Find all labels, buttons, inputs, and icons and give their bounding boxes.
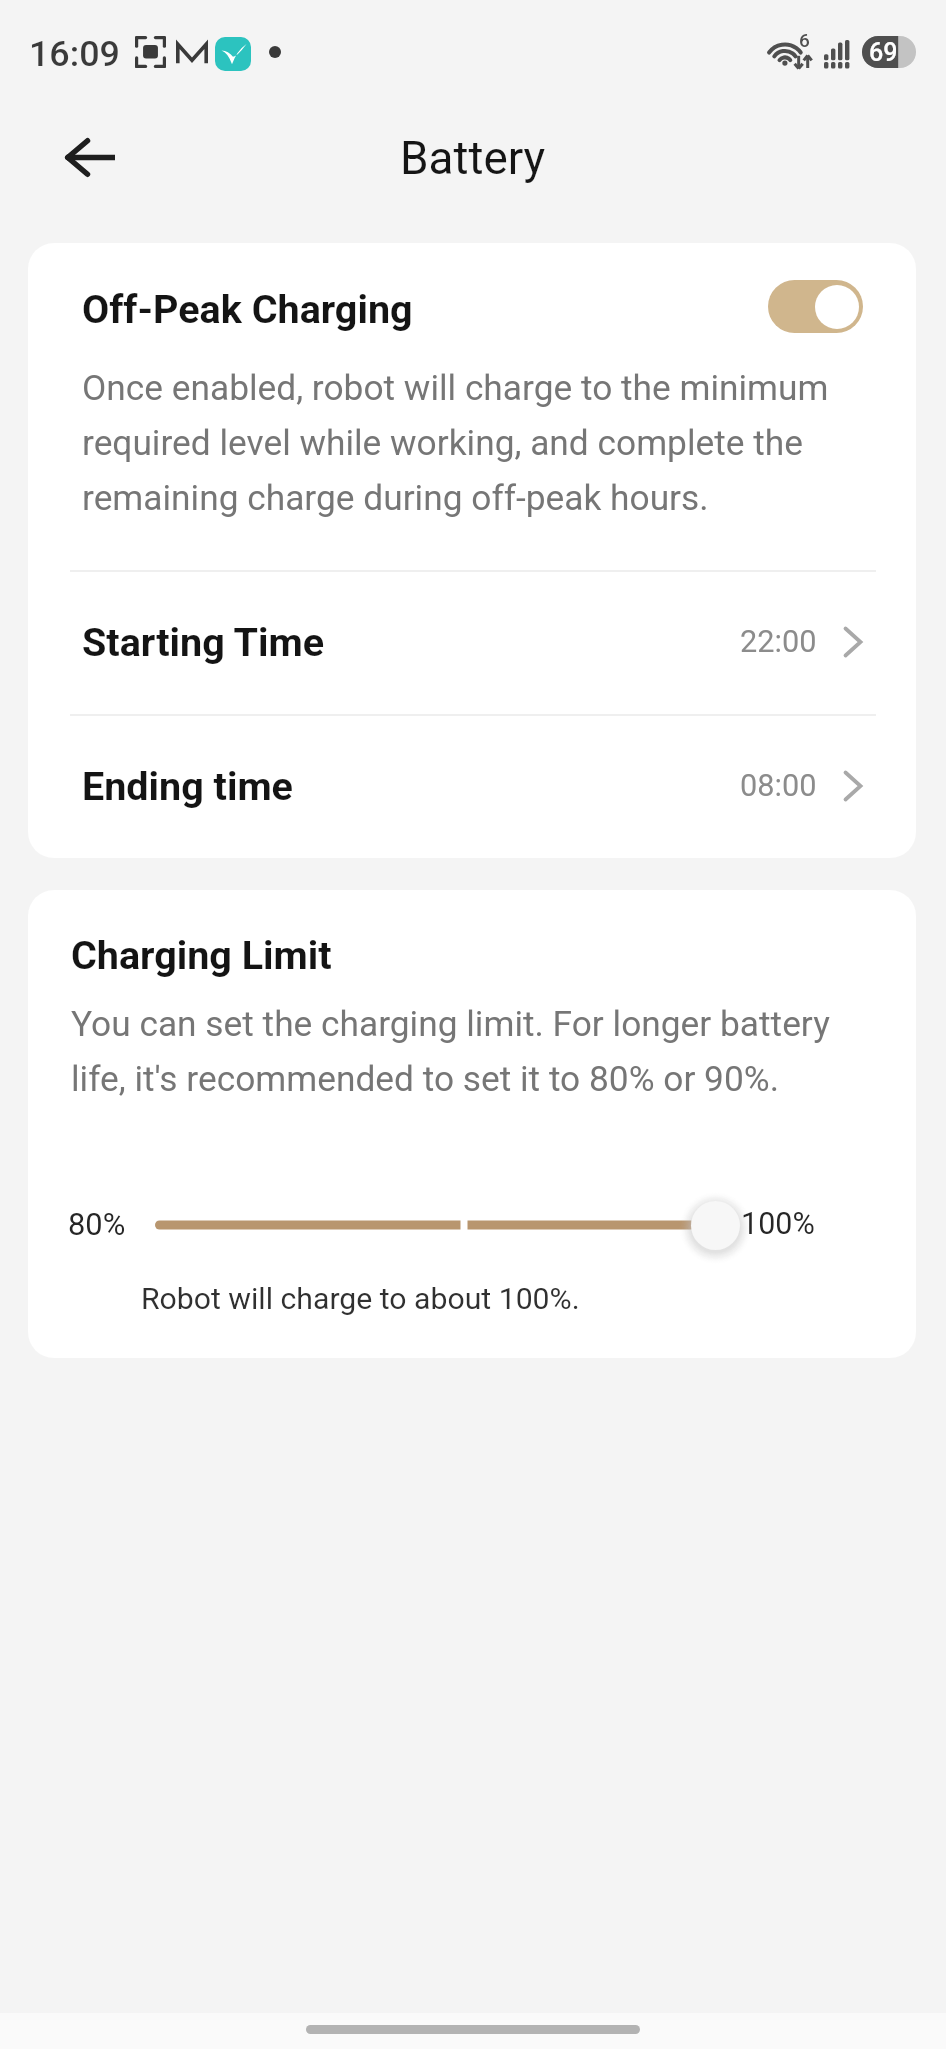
staticText: 08:00 — [740, 768, 817, 804]
staticText: Ending time — [82, 763, 740, 809]
staticText: Charging Limit — [71, 932, 332, 978]
staticText: You can set the charging limit. For long… — [71, 1003, 830, 1044]
staticText: required level while working, and comple… — [82, 422, 803, 463]
staticText: 6 — [799, 29, 810, 51]
button[interactable]: Off-Peak Charging toggle — [768, 280, 863, 333]
staticText: 22:00 — [740, 624, 817, 660]
button[interactable]: Charging limit slider — [153, 1196, 773, 1254]
staticText: Starting Time — [82, 619, 740, 665]
staticText: remaining charge during off-peak hours. — [82, 477, 709, 518]
staticText: Robot will charge to about 100%. — [141, 1281, 580, 1316]
staticText: life, it's recommended to set it to 80% … — [71, 1058, 779, 1099]
button[interactable]: Back — [45, 112, 135, 202]
button[interactable]: Starting Time — [28, 570, 916, 714]
staticText: Once enabled, robot will charge to the m… — [82, 367, 829, 408]
staticText: 100% — [741, 1206, 815, 1242]
staticText: 80% — [68, 1206, 126, 1242]
staticText: 16:09 — [29, 33, 120, 75]
staticText: Off-Peak Charging — [82, 286, 413, 332]
button[interactable]: Ending time — [28, 714, 916, 858]
staticText: 69 — [869, 38, 898, 67]
staticText: Battery — [400, 132, 546, 186]
